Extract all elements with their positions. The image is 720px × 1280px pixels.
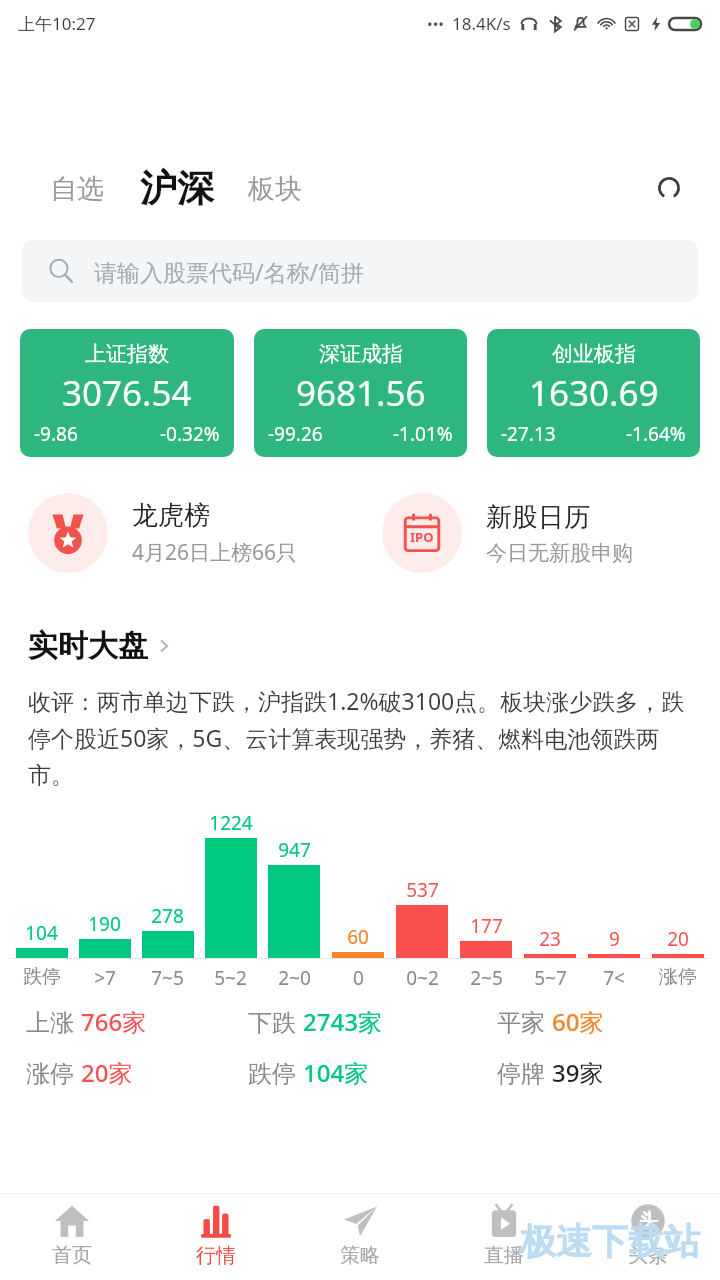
button[interactable]: 策略	[288, 1194, 432, 1280]
staticText: 20家	[81, 1056, 133, 1089]
staticText: 首页	[52, 1243, 92, 1268]
staticText: 平家	[497, 1005, 552, 1038]
staticText: 104	[25, 920, 58, 946]
staticText: 策略	[340, 1243, 380, 1268]
staticText: 今日无新股申购	[486, 540, 633, 566]
staticText: 20	[667, 926, 689, 952]
button[interactable]: 深证成指	[254, 329, 467, 457]
staticText: 请输入股票代码/名称/简拼	[94, 256, 365, 287]
staticText: 实时大盘	[28, 627, 148, 665]
staticText: 947	[278, 837, 311, 863]
staticText: 上涨	[26, 1005, 81, 1038]
staticText: 创业板指	[552, 341, 636, 367]
button[interactable]: IPO	[360, 487, 720, 579]
staticText: 7~5	[151, 965, 184, 991]
button[interactable]: 板块	[244, 166, 306, 212]
staticText: 9	[609, 926, 620, 952]
staticText: 行情	[196, 1243, 236, 1268]
button[interactable]: 直播	[432, 1194, 576, 1280]
staticText: 177	[470, 913, 503, 939]
staticText: 60	[347, 924, 369, 950]
staticText: 0	[353, 965, 364, 991]
staticText: 跌停	[248, 1056, 303, 1089]
staticText: 沪深	[140, 165, 214, 212]
staticText: -27.13	[501, 421, 556, 447]
staticText: •••	[427, 14, 444, 34]
staticText: 深证成指	[319, 341, 403, 367]
button[interactable]: 上证指数	[20, 329, 234, 457]
staticText: 新股日历	[486, 501, 590, 534]
staticText: 190	[88, 911, 121, 937]
staticText: 上午10:27	[18, 12, 96, 35]
staticText: 5~2	[214, 965, 247, 991]
staticText: 39家	[552, 1056, 604, 1089]
staticText: 1224	[209, 810, 253, 836]
staticText: 5~7	[534, 965, 567, 991]
staticText: 板块	[248, 172, 302, 206]
staticText: 2~0	[278, 965, 311, 991]
button[interactable]: 自选	[46, 166, 108, 212]
button[interactable]: 实时大盘	[28, 627, 174, 665]
staticText: -9.86	[34, 421, 78, 447]
staticText: 停牌	[497, 1056, 552, 1089]
button[interactable]: 沪深	[136, 163, 218, 214]
staticText: 涨停	[659, 965, 697, 989]
staticText: IPO	[410, 528, 434, 546]
staticText: 头	[639, 1209, 658, 1233]
staticText: -99.26	[268, 421, 323, 447]
staticText: 龙虎榜	[132, 499, 210, 532]
staticText: 1630.69	[529, 369, 659, 417]
staticText: 自选	[50, 172, 104, 206]
staticText: 2743家	[303, 1005, 382, 1038]
staticText: 极速下载站	[520, 1219, 700, 1264]
staticText: 4月26日上榜66只	[132, 538, 298, 567]
button[interactable]: Refresh	[646, 165, 692, 211]
button[interactable]: 请输入股票代码/名称/简拼	[22, 240, 698, 302]
staticText: >7	[94, 965, 116, 991]
staticText: 9681.56	[296, 369, 426, 417]
button[interactable]: 行情	[144, 1194, 288, 1280]
staticText: 3076.54	[62, 369, 192, 417]
staticText: 收评：两市单边下跌，沪指跌1.2%破3100点。板块涨少跌多，跌停个股近50家，…	[28, 685, 692, 790]
staticText: 2~5	[470, 965, 503, 991]
staticText: -1.64%	[626, 421, 686, 447]
staticText: 18.4K/s	[452, 12, 511, 35]
staticText: 直播	[484, 1243, 524, 1268]
staticText: 跌停	[23, 965, 61, 989]
staticText: 上证指数	[85, 341, 169, 367]
staticText: 头条	[628, 1243, 668, 1268]
button[interactable]: 龙虎榜	[0, 487, 360, 579]
staticText: -1.01%	[393, 421, 453, 447]
button[interactable]: 创业板指	[487, 329, 700, 457]
staticText: -0.32%	[160, 421, 220, 447]
staticText: 537	[406, 877, 439, 903]
staticText: 104家	[303, 1056, 369, 1089]
staticText: 下跌	[248, 1005, 303, 1038]
staticText: 涨停	[26, 1056, 81, 1089]
staticText: 60家	[552, 1005, 604, 1038]
staticText: 7<	[603, 965, 625, 991]
staticText: 0~2	[406, 965, 439, 991]
button[interactable]: 头	[576, 1194, 720, 1280]
staticText: 23	[539, 926, 561, 952]
button[interactable]: 首页	[0, 1194, 144, 1280]
staticText: 278	[151, 903, 184, 929]
staticText: 766家	[81, 1005, 147, 1038]
